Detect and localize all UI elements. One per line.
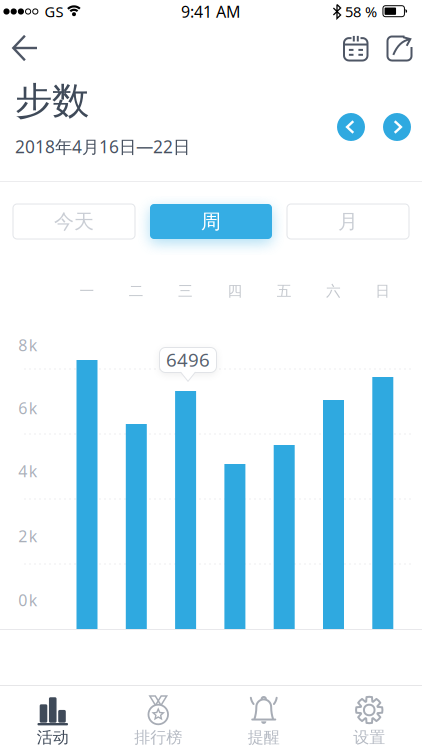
button[interactable]: Back [3,26,47,70]
staticText: 4k [18,460,38,482]
staticText: 9:41 AM [181,1,241,22]
staticText: 提醒 [248,728,280,747]
staticText: 月 [338,209,358,234]
button[interactable]: 提醒 [211,686,316,750]
staticText: 四 [227,282,242,300]
staticText: 步数 [15,78,89,124]
staticText: 活动 [37,728,69,747]
button[interactable]: Calendar [333,26,377,70]
staticText: 一 [79,282,94,300]
button[interactable]: 排行榜 [105,686,211,750]
button[interactable]: 设置 [316,686,422,750]
staticText: 三 [178,282,193,300]
staticText: 2k [18,525,38,547]
button[interactable]: Next week [383,113,411,141]
staticText: 2018年4月16日—22日 [15,135,190,158]
button[interactable]: 周 [150,204,272,239]
button[interactable]: Previous week [337,113,365,141]
staticText: 周 [201,209,221,234]
staticText: 6496 [166,347,210,372]
staticText: 设置 [353,728,385,747]
button[interactable]: 月 [287,204,409,239]
button[interactable]: Share [376,26,420,70]
staticText: 六 [326,282,341,300]
staticText: 五 [277,282,292,300]
staticText: 58 % [345,2,377,21]
staticText: 0k [18,589,38,611]
staticText: GS [44,2,63,21]
staticText: 6k [18,397,38,419]
staticText: 8k [18,334,38,356]
button[interactable]: 活动 [0,686,105,750]
button[interactable]: 今天 [13,204,135,239]
staticText: 今天 [54,209,94,234]
staticText: 二 [129,282,144,300]
staticText: 日 [375,282,390,300]
staticText: 排行榜 [134,728,182,747]
